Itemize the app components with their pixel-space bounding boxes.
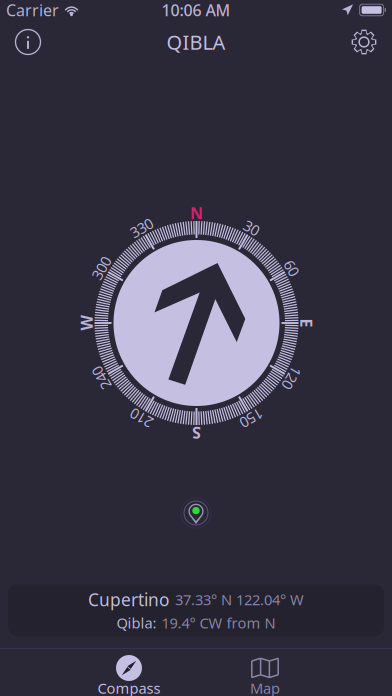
staticText: N [190,202,203,224]
staticText: W [79,312,94,334]
button[interactable]: Map [197,649,333,696]
staticText: 300 [89,258,113,278]
staticText: Compass [97,678,160,696]
staticText: Cupertino [88,588,169,611]
button[interactable]: Compass [61,649,197,696]
staticText: 10:06 AM [161,0,230,21]
staticText: 19.4° CW from N [161,613,275,633]
staticText: 30 [243,218,259,237]
staticText: 120 [280,368,304,388]
staticText: Carrier [6,0,59,21]
staticText: 330 [129,218,153,237]
staticText: 150 [239,408,263,428]
staticText: 37.33° N 122.04° W [175,590,304,609]
button[interactable]: Info [6,20,50,64]
staticText: Qibla: [116,613,156,633]
staticText: 210 [129,408,153,428]
button[interactable]: Settings [342,20,386,64]
staticText: 60 [284,258,300,278]
staticText: S [192,422,201,444]
staticText: E [302,312,311,334]
staticText: QIBLA [166,29,225,55]
staticText: Map [250,678,280,696]
staticText: 240 [89,368,113,388]
